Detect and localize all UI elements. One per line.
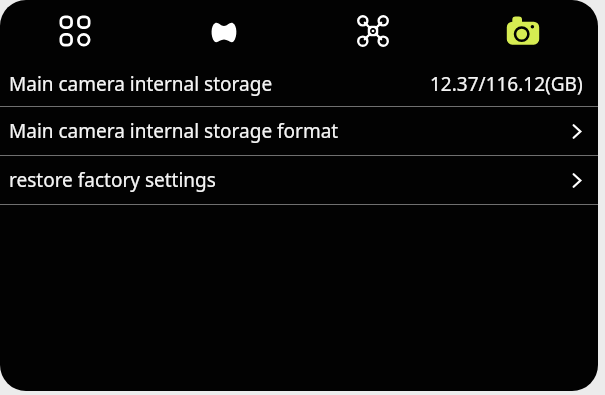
staticText: Main camera internal storage	[9, 71, 273, 97]
button[interactable]: Main camera internal storage	[0, 61, 598, 106]
staticText: Main camera internal storage format	[9, 118, 339, 144]
button[interactable]: Apps	[0, 0, 149, 61]
button[interactable]: restore factory settings	[0, 156, 598, 204]
button[interactable]: Drone	[298, 0, 448, 61]
staticText: restore factory settings	[9, 167, 216, 193]
button[interactable]: Controller	[149, 0, 298, 61]
button[interactable]: Camera	[448, 0, 598, 61]
button[interactable]: Main camera internal storage format	[0, 107, 598, 155]
staticText: 12.37/116.12(GB)	[430, 71, 583, 97]
